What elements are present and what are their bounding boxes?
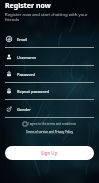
- button[interactable]: Email: [6, 31, 99, 47]
- staticText: Password: [17, 72, 35, 77]
- button[interactable]: Username: [6, 49, 99, 65]
- staticText: I agree to the terms and conditions: [28, 122, 76, 126]
- staticText: Repeat password: [17, 89, 49, 94]
- button[interactable]: Terms of service and Privacy Policy: [26, 130, 73, 134]
- staticText: Gender: [17, 107, 31, 112]
- button[interactable]: Gender: [6, 101, 99, 117]
- button[interactable]: Repeat password: [6, 83, 99, 99]
- button[interactable]: Sign Up: [5, 146, 94, 160]
- button[interactable]: Password: [6, 66, 99, 82]
- staticText: Username: [17, 55, 37, 60]
- staticText: Sign Up: [41, 150, 58, 156]
- staticText: Register now: [5, 1, 51, 11]
- button[interactable]: Agree to terms checkbox: [23, 122, 76, 126]
- staticText: Email: [17, 37, 28, 42]
- staticText: Register now and start chatting with you…: [5, 11, 91, 22]
- other: Agree to terms checkbox: [23, 122, 27, 126]
